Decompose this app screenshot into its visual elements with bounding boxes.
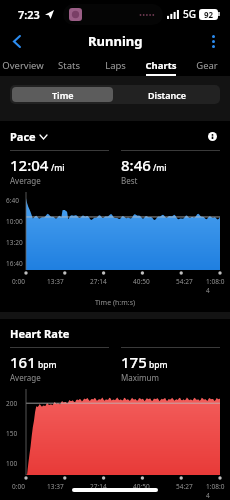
button[interactable]: More options xyxy=(196,28,230,54)
staticText: 54:27 xyxy=(176,277,193,286)
staticText: Running xyxy=(88,32,143,50)
button[interactable]: Pace xyxy=(10,129,47,144)
staticText: Time xyxy=(52,89,74,101)
staticText: 100 xyxy=(6,459,18,468)
staticText: 200 xyxy=(6,399,18,408)
button[interactable]: Gear xyxy=(184,54,230,76)
staticText: 0:00 xyxy=(12,277,25,286)
button[interactable]: Charts xyxy=(138,54,184,76)
staticText: 0:00 xyxy=(12,482,25,491)
staticText: Distance xyxy=(148,89,187,101)
staticText: 13:20 xyxy=(6,238,23,247)
button[interactable]: Heart Rate xyxy=(10,326,70,341)
staticText: Pace xyxy=(10,129,36,144)
staticText: Gear xyxy=(196,59,218,72)
staticText: 40:50 xyxy=(133,277,150,286)
button[interactable]: Laps xyxy=(92,54,138,76)
staticText: 7:23 xyxy=(18,7,40,22)
staticText: 6:40 xyxy=(6,196,19,205)
staticText: 161 xyxy=(10,352,36,372)
staticText: Maximum xyxy=(121,372,159,383)
staticText: 175 xyxy=(121,352,147,372)
staticText: 13:37 xyxy=(47,482,64,491)
staticText: 5G xyxy=(183,7,196,21)
staticText: /mi xyxy=(153,162,167,174)
staticText: 12:04 xyxy=(10,155,49,175)
staticText: 10:00 xyxy=(6,217,23,226)
staticText: Stats xyxy=(58,59,80,72)
staticText: Overview xyxy=(2,59,44,72)
staticText: Average xyxy=(10,175,41,186)
staticText: 27:14 xyxy=(90,277,107,286)
staticText: Time (h:m:s) xyxy=(0,298,230,308)
staticText: 13:37 xyxy=(47,277,64,286)
staticText: bpm xyxy=(149,359,168,371)
staticText: 8:46 xyxy=(121,155,151,175)
staticText: 92 xyxy=(204,9,214,20)
button[interactable]: Time xyxy=(12,87,113,102)
staticText: /mi xyxy=(51,162,65,174)
staticText: 40:50 xyxy=(133,482,150,491)
staticText: bpm xyxy=(38,359,57,371)
staticText: Best xyxy=(121,175,138,186)
staticText: 1:08:04 xyxy=(206,277,228,295)
staticText: 1:08:04 xyxy=(206,482,228,500)
staticText: 27:14 xyxy=(90,482,107,491)
button[interactable]: Overview xyxy=(0,54,46,76)
staticText: 16:40 xyxy=(6,259,23,268)
button[interactable]: Back xyxy=(0,28,34,54)
staticText: Heart Rate xyxy=(10,326,70,341)
staticText: Average xyxy=(10,372,41,383)
button[interactable]: Distance xyxy=(115,85,220,104)
staticText: 150 xyxy=(6,429,18,438)
staticText: Laps xyxy=(105,59,126,72)
staticText: 54:27 xyxy=(176,482,193,491)
staticText: Charts xyxy=(145,59,177,72)
button[interactable]: Stats xyxy=(46,54,92,76)
button[interactable]: Info xyxy=(204,128,220,144)
